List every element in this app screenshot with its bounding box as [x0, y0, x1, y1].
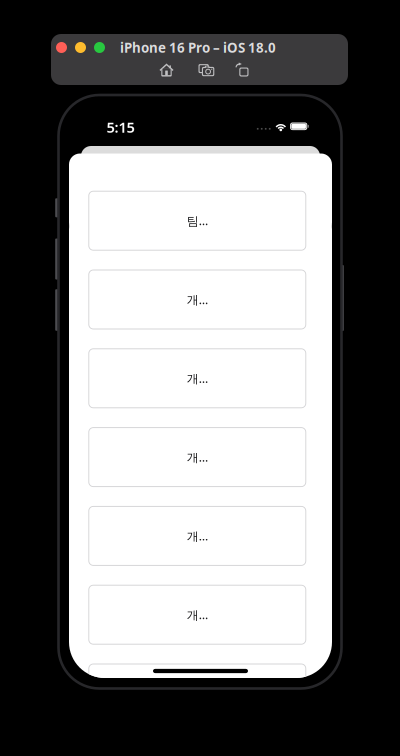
button[interactable]: Rotate: [225, 57, 259, 81]
button[interactable]: 개…: [89, 349, 306, 408]
staticText: iPhone 16 Pro – iOS 18.0: [120, 39, 276, 56]
button[interactable]: Close: [56, 42, 67, 53]
staticText: 5:15: [106, 117, 134, 137]
button[interactable]: 개…: [89, 585, 306, 644]
staticText: 개…: [187, 607, 208, 623]
staticText: 개…: [187, 370, 208, 386]
button[interactable]: Zoom: [94, 42, 105, 53]
button[interactable]: 개…: [89, 428, 306, 487]
staticText: 개…: [187, 528, 208, 544]
staticText: 개…: [187, 685, 208, 701]
button[interactable]: 개…: [89, 506, 306, 565]
staticText: 개…: [187, 449, 208, 465]
button[interactable]: Screenshot: [189, 58, 223, 82]
button[interactable]: 팀…: [89, 191, 306, 250]
button[interactable]: Home: [149, 58, 183, 82]
button[interactable]: 개…: [89, 664, 306, 723]
staticText: 팀…: [187, 213, 208, 229]
staticText: 개…: [187, 291, 208, 307]
button[interactable]: Minimise: [75, 42, 86, 53]
button[interactable]: 개…: [89, 270, 306, 329]
